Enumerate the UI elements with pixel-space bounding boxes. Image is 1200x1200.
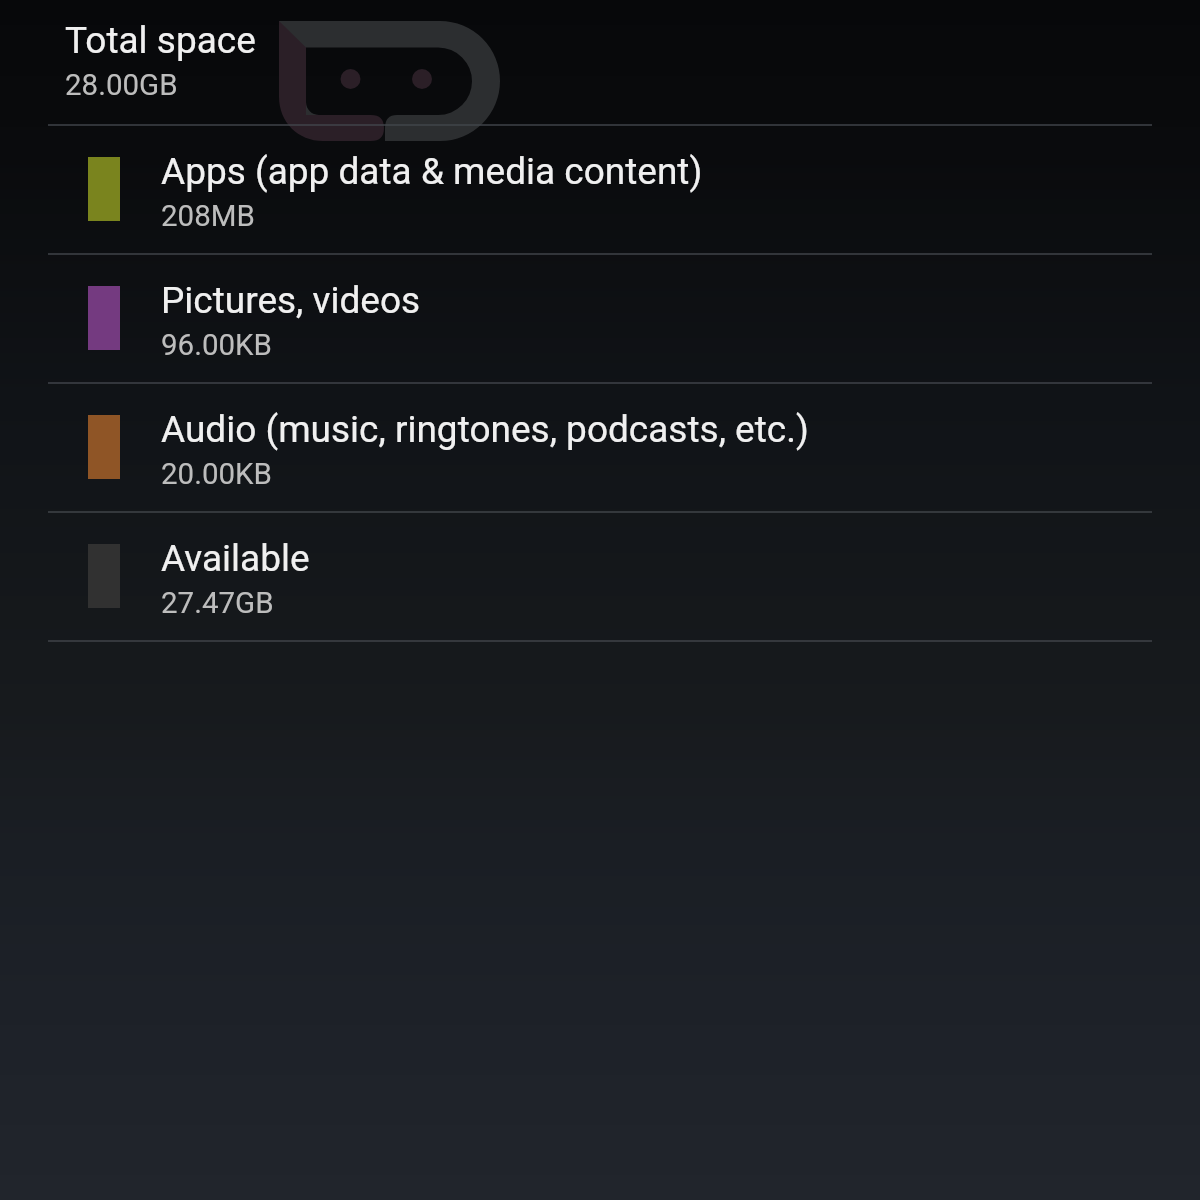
staticText: Pictures, videos: [161, 279, 421, 322]
staticText: 27.47GB: [161, 586, 274, 621]
staticText: 96.00KB: [161, 328, 272, 363]
staticText: Audio (music, ringtones, podcasts, etc.): [161, 408, 809, 451]
button[interactable]: Audio (music, ringtones, podcasts, etc.): [0, 383, 1200, 512]
button[interactable]: Total space: [0, 0, 1200, 125]
button[interactable]: Apps (app data & media content): [0, 125, 1200, 254]
staticText: 20.00KB: [161, 457, 272, 492]
button[interactable]: Pictures, videos: [0, 254, 1200, 383]
button[interactable]: Available: [0, 512, 1200, 641]
staticText: Apps (app data & media content): [161, 150, 703, 193]
staticText: Total space: [65, 19, 256, 62]
staticText: Available: [161, 537, 310, 580]
staticText: 208MB: [161, 199, 255, 234]
staticText: 28.00GB: [65, 68, 178, 103]
